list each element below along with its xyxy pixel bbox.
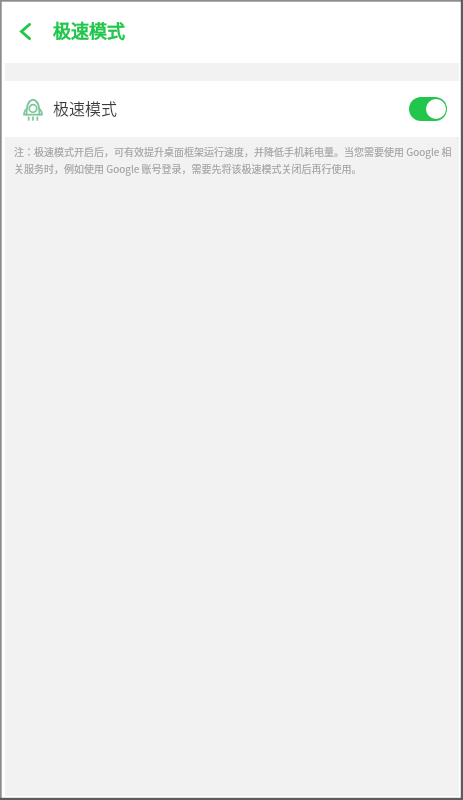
button[interactable]: Speed mode toggle, on [409,97,447,121]
staticText: 极速模式 [53,96,118,119]
button[interactable]: 极速模式 [0,81,463,137]
button[interactable]: Back [0,0,50,63]
staticText: 注：极速模式开启后，可有效提升桌面框架运行速度，并降低手机耗电量。当您需要使用 … [14,144,455,176]
staticText: 极速模式 [53,17,125,43]
